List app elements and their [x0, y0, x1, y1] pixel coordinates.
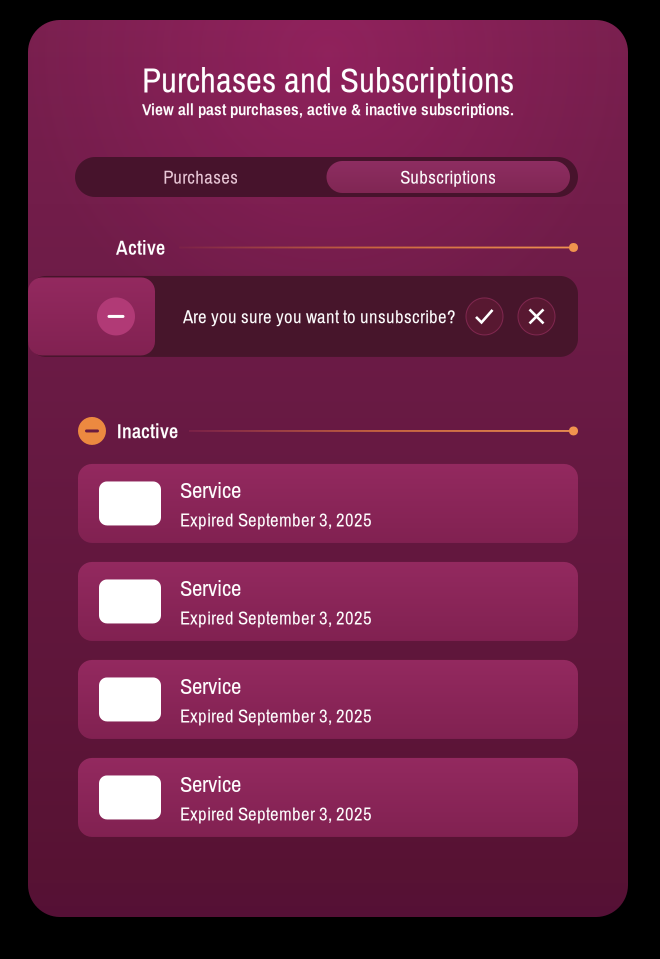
- staticText: Expired September 3, 2025: [180, 801, 372, 826]
- staticText: Expired September 3, 2025: [180, 605, 372, 630]
- staticText: Purchases and Subscriptions: [142, 57, 514, 103]
- button[interactable]: Service: [78, 464, 578, 543]
- staticText: Service: [180, 671, 241, 701]
- button[interactable]: Unsubscribe: [28, 277, 155, 355]
- staticText: Inactive: [117, 417, 178, 444]
- button[interactable]: Purchases: [75, 157, 326, 197]
- button[interactable]: Cancel: [518, 298, 555, 335]
- staticText: Expired September 3, 2025: [180, 507, 372, 532]
- staticText: View all past purchases, active & inacti…: [142, 97, 514, 121]
- staticText: Are you sure you want to unsubscribe?: [183, 304, 456, 329]
- staticText: Subscriptions: [400, 164, 496, 189]
- button[interactable]: Service: [78, 562, 578, 641]
- button[interactable]: Subscriptions: [326, 161, 578, 193]
- staticText: Active: [116, 234, 165, 261]
- button[interactable]: Confirm unsubscribe: [466, 298, 503, 335]
- button[interactable]: Service: [78, 758, 578, 837]
- staticText: Purchases: [163, 164, 238, 189]
- staticText: Service: [180, 475, 241, 505]
- button[interactable]: Service: [78, 660, 578, 739]
- staticText: Expired September 3, 2025: [180, 703, 372, 728]
- staticText: Service: [180, 769, 241, 799]
- staticText: Service: [180, 573, 241, 603]
